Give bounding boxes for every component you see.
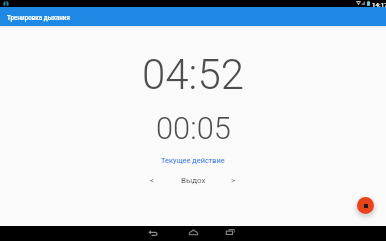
staticText: Тренировка дыхания <box>7 14 70 21</box>
button[interactable]: Recent apps <box>220 225 240 237</box>
staticText: 00:05 <box>156 110 231 146</box>
staticText: > <box>231 176 236 185</box>
button[interactable]: Stop <box>357 197 374 214</box>
button[interactable]: Тренировка дыхания <box>0 7 386 26</box>
staticText: Выдох <box>181 176 206 185</box>
button[interactable]: Next step <box>220 173 246 188</box>
button[interactable]: Текущее действие <box>161 156 225 165</box>
staticText: 14:17 <box>372 1 386 8</box>
button[interactable]: Выдох <box>170 173 216 188</box>
staticText: < <box>150 176 155 185</box>
staticText: 04:52 <box>142 50 245 99</box>
button[interactable]: Back <box>142 226 162 238</box>
button[interactable]: Previous step <box>139 173 165 188</box>
button[interactable]: Home <box>183 226 203 238</box>
staticText: Текущее действие <box>161 156 225 165</box>
